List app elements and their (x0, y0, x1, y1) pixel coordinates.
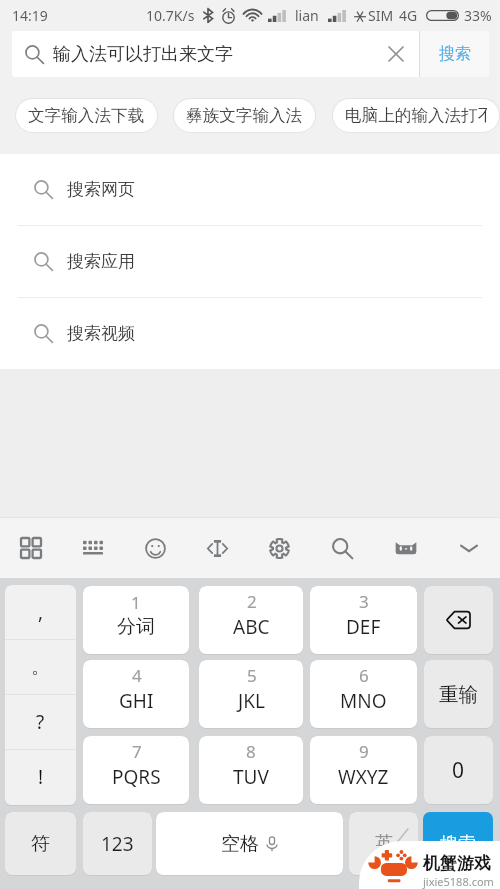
button[interactable]: Clear (373, 31, 419, 77)
button[interactable]: Settings (248, 518, 311, 578)
button[interactable]: 英 (349, 812, 418, 875)
button[interactable]: 4 (83, 660, 189, 728)
staticText: 搜索视频 (67, 323, 135, 344)
button[interactable]: 5 (199, 660, 303, 728)
staticText: 1 (131, 591, 141, 614)
staticText: 符 (31, 832, 50, 856)
staticText: DEF (346, 614, 381, 640)
button[interactable]: 文字输入法下载 (16, 99, 157, 132)
staticText: 输入法可以打出来文字 (53, 43, 233, 66)
staticText: 重输 (439, 682, 478, 707)
button[interactable]: 搜索网页 (0, 154, 500, 225)
button[interactable]: 彝族文字输入法 (174, 99, 315, 132)
staticText: lian (295, 6, 319, 25)
staticText: 搜索 (440, 833, 476, 856)
staticText: 搜索 (439, 44, 471, 64)
staticText: 5 (247, 664, 257, 687)
staticText: GHI (119, 688, 154, 714)
button[interactable]: 9 (310, 736, 417, 804)
staticText: MNO (340, 688, 387, 714)
button[interactable]: Theme (374, 518, 437, 578)
button[interactable]: 2 (199, 586, 303, 654)
button[interactable]: 输入法可以打出来文字 (12, 31, 373, 77)
button[interactable]: 搜索应用 (0, 226, 500, 297)
button[interactable]: 1 (83, 586, 189, 654)
staticText: 14:19 (12, 6, 48, 25)
staticText: 搜索网页 (67, 179, 135, 200)
button[interactable]: 0 (424, 736, 493, 804)
button[interactable]: Keyboard layout (62, 518, 124, 578)
button[interactable]: Emoji (124, 518, 186, 578)
button[interactable]: 。 (5, 640, 76, 694)
button[interactable]: 搜索视频 (0, 298, 500, 369)
staticText: ! (38, 764, 44, 790)
button[interactable]: 7 (83, 736, 189, 804)
staticText: 英 (375, 832, 393, 855)
staticText: WXYZ (338, 764, 389, 790)
staticText: 9 (359, 740, 369, 763)
staticText: jixie5188.com (423, 874, 494, 889)
staticText: 6 (359, 664, 369, 687)
staticText: 机蟹游戏 (423, 853, 491, 874)
staticText: ABC (233, 614, 270, 640)
button[interactable]: 8 (199, 736, 303, 804)
button[interactable]: 3 (310, 586, 417, 654)
staticText: 文字输入法下载 (28, 105, 145, 126)
staticText: , (38, 599, 44, 625)
staticText: ? (36, 709, 45, 735)
button[interactable]: 搜索 (423, 812, 493, 876)
button[interactable]: , (5, 585, 76, 639)
staticText: 电脑上的输入法打不出 (345, 105, 487, 126)
staticText: 分词 (117, 615, 155, 639)
button[interactable]: ! (5, 750, 76, 804)
staticText: TUV (233, 764, 269, 790)
button[interactable]: 空格 (156, 812, 343, 875)
staticText: 4 (132, 664, 142, 687)
staticText: 0 (452, 756, 465, 785)
staticText: 10.7K/s (146, 6, 195, 25)
staticText: 2 (247, 590, 257, 613)
button[interactable]: 123 (83, 812, 152, 875)
button[interactable]: Edit text (186, 518, 248, 578)
staticText: 8 (246, 740, 256, 763)
staticText: 4G (399, 6, 418, 25)
staticText: 3 (359, 590, 369, 613)
button[interactable]: Backspace (424, 586, 493, 654)
button[interactable]: 电脑上的输入法打不出 (333, 99, 499, 132)
staticText: 搜索应用 (67, 251, 135, 272)
staticText: PQRS (112, 764, 161, 790)
staticText: 7 (132, 740, 142, 763)
staticText: 123 (101, 831, 134, 857)
button[interactable]: Search (311, 518, 374, 578)
button[interactable]: Apps (0, 518, 62, 578)
button[interactable]: 重输 (424, 660, 493, 728)
staticText: 33% (464, 6, 492, 25)
button[interactable]: 符 (5, 812, 76, 875)
button[interactable]: Hide keyboard (437, 518, 500, 578)
button[interactable]: ? (5, 695, 76, 749)
staticText: SIM (368, 6, 394, 25)
button[interactable]: 6 (310, 660, 417, 728)
staticText: JKL (238, 688, 265, 714)
staticText: 。 (31, 655, 50, 679)
staticText: 彝族文字输入法 (186, 105, 303, 126)
staticText: 空格 (221, 832, 259, 856)
button[interactable]: 搜索 (420, 31, 489, 77)
